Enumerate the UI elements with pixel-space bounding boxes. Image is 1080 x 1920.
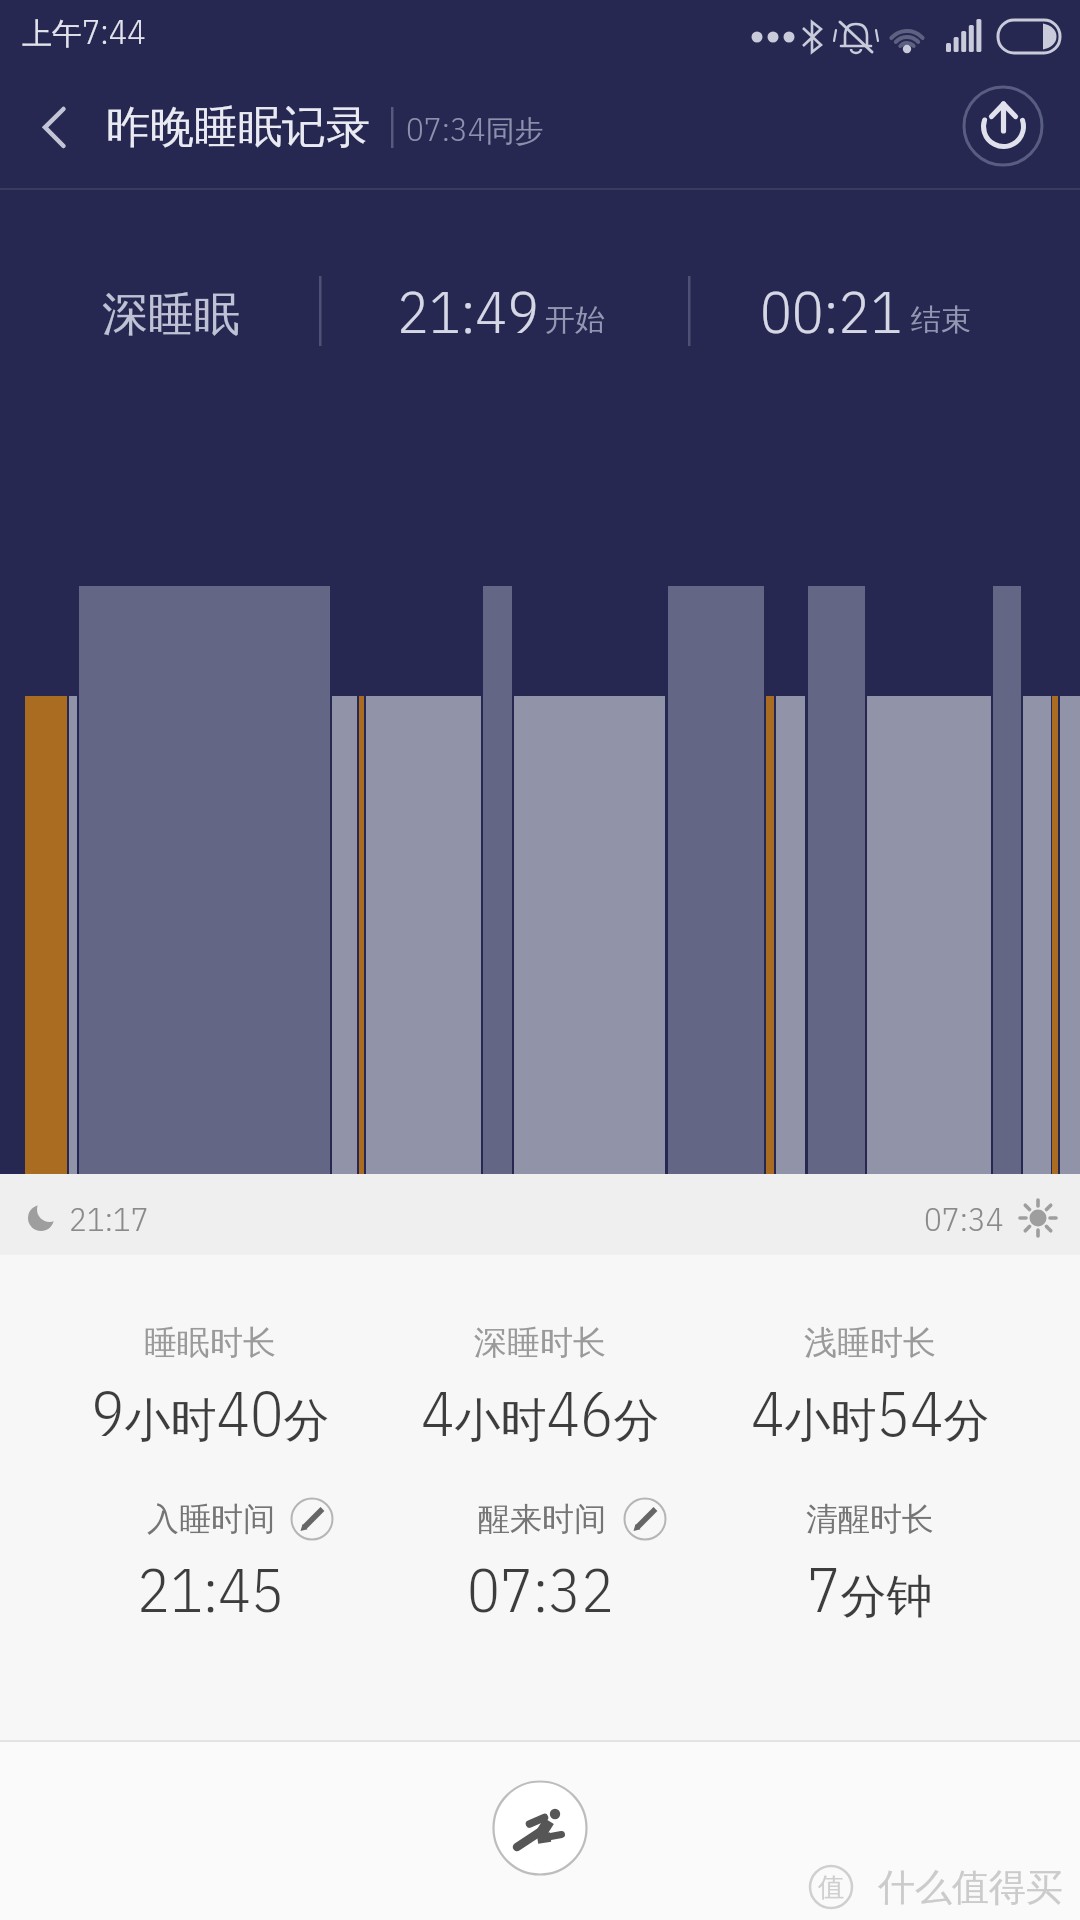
staticText: 开始 [545,301,605,339]
staticText: 7分钟 [807,1548,933,1629]
staticText: 21:17 [69,1197,149,1240]
staticText: 醒来时间 [478,1499,606,1539]
staticText: 21:49 [397,273,540,350]
staticText: 21:45 [137,1549,284,1628]
button[interactable] [10,85,95,170]
staticText: 值 [818,1871,844,1904]
staticText: 深睡时长 [474,1322,606,1364]
staticText: 什么值得买 [878,1864,1063,1911]
staticText: 睡眠时长 [144,1322,276,1364]
staticText: 入睡时间 [147,1499,275,1539]
staticText: 4小时46分 [421,1372,660,1453]
staticText: 00:21 [760,273,903,350]
staticText: 07:34同步 [406,107,544,150]
staticText: 昨晚睡眠记录 [106,100,370,155]
button[interactable] [958,81,1048,171]
button[interactable] [493,1781,587,1875]
staticText: 深睡眠 [102,286,240,344]
staticText: 4小时54分 [751,1372,990,1453]
button[interactable] [286,1493,338,1545]
staticText: 浅睡时长 [804,1322,936,1364]
staticText: 清醒时长 [806,1499,934,1539]
staticText: 07:34 [924,1197,1004,1240]
staticText: 9小时40分 [91,1372,330,1453]
staticText: 上午7:44 [22,9,146,53]
button[interactable] [619,1493,671,1545]
staticText: 结束 [911,301,971,339]
staticText: 07:32 [467,1549,614,1628]
